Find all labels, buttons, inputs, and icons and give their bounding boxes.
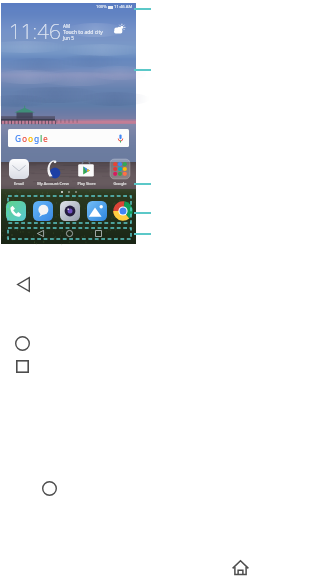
other: Recent apps <box>16 360 29 373</box>
staticText: Google <box>113 181 127 186</box>
button[interactable]: Home <box>232 560 249 575</box>
staticText: G <box>15 133 22 144</box>
button[interactable]: G <box>8 129 129 147</box>
button[interactable]: Play Store <box>69 159 103 186</box>
staticText: g <box>34 133 40 144</box>
button[interactable]: Camera <box>60 201 80 221</box>
staticText: Email <box>14 181 24 186</box>
button[interactable]: Phone <box>6 201 26 221</box>
staticText: My Account Crew <box>37 181 69 186</box>
other: Back <box>17 277 30 292</box>
button[interactable]: Recent apps <box>95 230 102 237</box>
staticText: Play Store <box>77 181 96 186</box>
button[interactable]: Google <box>103 159 137 186</box>
staticText: Touch to add city <box>63 29 103 36</box>
staticText: o <box>28 133 34 144</box>
button[interactable]: Gallery <box>87 201 107 221</box>
button[interactable]: Back <box>37 230 44 237</box>
staticText: 11:46 AM <box>114 4 133 10</box>
button[interactable]: Messages <box>33 201 53 221</box>
other: Home button <box>42 481 57 496</box>
staticText: 100% <box>96 4 107 10</box>
button[interactable]: Email <box>2 159 36 186</box>
staticText: l <box>40 133 43 144</box>
staticText: o <box>22 133 28 144</box>
button[interactable]: Chrome <box>113 201 133 221</box>
button[interactable]: Home <box>66 230 73 237</box>
staticText: e <box>43 133 48 144</box>
other: Home <box>15 336 30 351</box>
staticText: Jun 5 <box>63 35 74 41</box>
button[interactable]: My Account Crew <box>36 159 70 186</box>
staticText: AM <box>63 23 71 29</box>
staticText: 11:46 <box>9 17 61 45</box>
